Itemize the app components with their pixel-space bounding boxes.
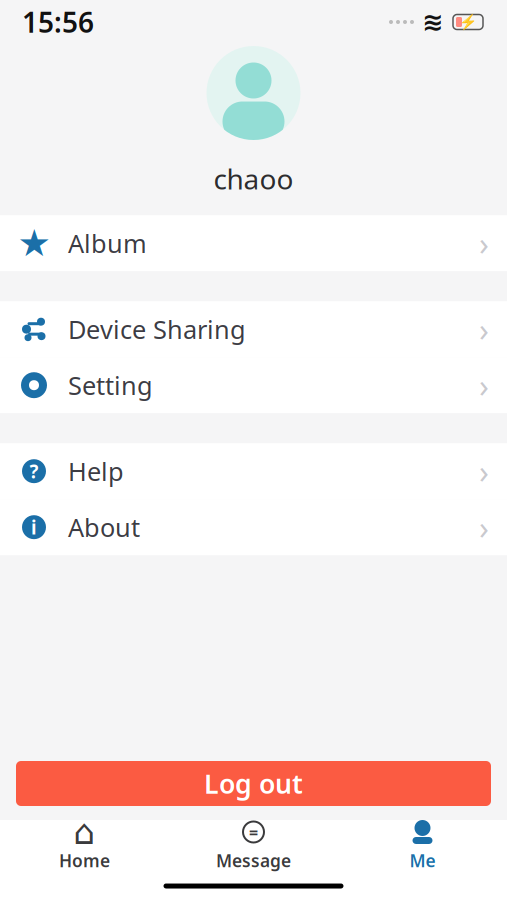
staticText: › [479, 364, 489, 406]
staticText: Album [68, 226, 147, 260]
button[interactable]: Log out [16, 761, 491, 806]
staticText: Device Sharing [68, 312, 246, 346]
staticText: 15:56 [22, 3, 94, 41]
staticText: About [68, 510, 140, 544]
button[interactable]: ? [0, 443, 507, 499]
staticText: ⚡ [459, 14, 477, 30]
staticText: › [479, 450, 489, 492]
staticText: = [249, 821, 258, 843]
staticText: ? [29, 459, 38, 484]
button[interactable]: = [169, 820, 338, 872]
staticText: ≋ [422, 8, 443, 36]
staticText: › [479, 222, 489, 264]
staticText: Setting [68, 368, 153, 402]
button[interactable]: Me [338, 820, 507, 872]
button[interactable]: Setting [0, 357, 507, 413]
staticText: Help [68, 454, 124, 488]
staticText: Me [409, 849, 435, 872]
button[interactable]: Device Sharing [0, 301, 507, 357]
button[interactable]: ★ [0, 215, 507, 271]
staticText: › [479, 506, 489, 548]
staticText: Home [59, 849, 110, 872]
staticText: i [31, 515, 37, 540]
staticText: ★ [17, 222, 50, 264]
staticText: Log out [204, 766, 303, 801]
staticText: chaoo [213, 160, 293, 197]
staticText: › [479, 308, 489, 350]
staticText: ⌂ [73, 812, 95, 852]
button[interactable]: i [0, 499, 507, 555]
staticText: Message [216, 849, 291, 872]
button[interactable]: ⌂ [0, 820, 169, 872]
